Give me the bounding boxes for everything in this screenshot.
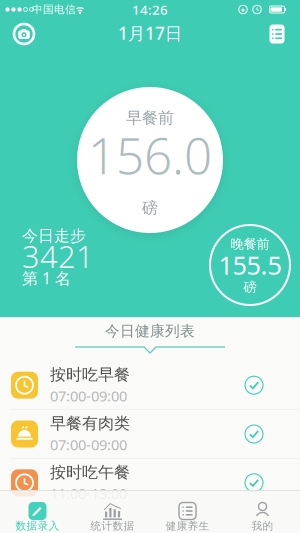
staticText: 07:00-09:00 — [50, 435, 127, 454]
button[interactable]: 早餐有肉类 — [0, 410, 300, 458]
button[interactable]: 统计数据 — [75, 490, 150, 533]
staticText: 156.0 — [88, 122, 212, 188]
staticText: 磅 — [243, 279, 256, 295]
staticText: 晚餐前 — [230, 236, 269, 252]
button[interactable] — [264, 21, 290, 47]
button[interactable]: 按时吃午餐 — [0, 459, 300, 507]
staticText: 数据录入 — [15, 519, 59, 532]
staticText: 早餐有肉类 — [50, 414, 130, 433]
staticText: 11:00-13:00 — [50, 484, 127, 503]
button[interactable]: 数据录入 — [0, 490, 75, 533]
staticText: 155.5 — [218, 248, 281, 282]
staticText: 第 1 名 — [22, 267, 71, 289]
staticText: 今日健康列表 — [105, 322, 195, 340]
staticText: 按时吃午餐 — [50, 462, 130, 482]
staticText: 磅 — [142, 198, 158, 218]
staticText: 健康养生 — [165, 519, 209, 532]
button[interactable]: 按时吃早餐 — [0, 361, 300, 409]
button[interactable]: 健康养生 — [150, 490, 225, 533]
staticText: 早餐前 — [126, 108, 174, 128]
staticText: 中国电信 — [32, 3, 76, 16]
staticText: 3421 — [22, 236, 94, 276]
staticText: 我的 — [251, 519, 273, 532]
staticText: 统计数据 — [90, 519, 134, 532]
staticText: 1月17日 — [118, 21, 182, 44]
staticText: 14:26 — [132, 1, 168, 18]
staticText: 今日走步 — [22, 226, 86, 246]
button[interactable] — [9, 20, 39, 47]
staticText: 按时吃早餐 — [50, 365, 130, 385]
staticText: 07:00-09:00 — [50, 386, 127, 405]
button[interactable]: 我的 — [225, 490, 300, 533]
